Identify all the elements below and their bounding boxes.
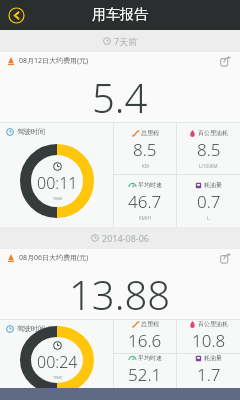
staticText: 5.4: [92, 70, 148, 122]
staticText: 8.5: [197, 138, 221, 161]
button[interactable]: 耗油量: [177, 175, 240, 227]
staticText: 百公里油耗: [198, 320, 228, 328]
staticText: 平均时速: [138, 354, 162, 362]
button[interactable]: 平均时速: [114, 354, 176, 388]
staticText: 8.5: [133, 138, 157, 161]
staticText: 16.6: [128, 329, 162, 352]
button[interactable]: Share: [217, 53, 233, 69]
staticText: 7天前: [114, 35, 138, 47]
staticText: 08月12日大约费用(元): [19, 56, 89, 66]
staticText: 百公里油耗: [198, 129, 228, 137]
staticText: KM: [142, 163, 149, 169]
staticText: TIME: [53, 196, 63, 201]
staticText: 总里程: [141, 320, 159, 328]
button[interactable]: 百公里油耗: [177, 320, 240, 353]
staticText: 46.7: [128, 190, 162, 213]
button[interactable]: 百公里油耗: [177, 123, 240, 174]
staticText: 52.1: [128, 363, 162, 386]
staticText: 用车报告: [92, 6, 148, 24]
button[interactable]: 总里程: [114, 320, 176, 353]
staticText: 驾驶时间: [17, 127, 45, 136]
staticText: TIME: [53, 375, 63, 380]
staticText: 10.8: [192, 329, 226, 352]
button[interactable]: Back: [5, 4, 27, 26]
staticText: 00:11: [37, 172, 78, 194]
staticText: 13.88: [69, 267, 171, 319]
staticText: 0.7: [197, 190, 221, 213]
staticText: 2014-08-06: [102, 232, 149, 244]
staticText: L: [207, 215, 210, 221]
staticText: 驾驶时间: [17, 324, 45, 333]
button[interactable]: 平均时速: [114, 175, 176, 227]
staticText: 平均时速: [138, 181, 162, 189]
staticText: 总里程: [141, 129, 159, 137]
button[interactable]: 耗油量: [177, 354, 240, 388]
staticText: 耗油量: [204, 181, 222, 189]
staticText: 00:24: [37, 351, 78, 373]
staticText: 1.7: [197, 363, 221, 386]
button[interactable]: Share: [217, 250, 233, 266]
staticText: KM/H: [139, 215, 151, 221]
staticText: 08月06日大约费用(元): [19, 253, 89, 263]
staticText: 耗油量: [204, 354, 222, 362]
staticText: L/100KM: [199, 163, 218, 169]
button[interactable]: 总里程: [114, 123, 176, 174]
